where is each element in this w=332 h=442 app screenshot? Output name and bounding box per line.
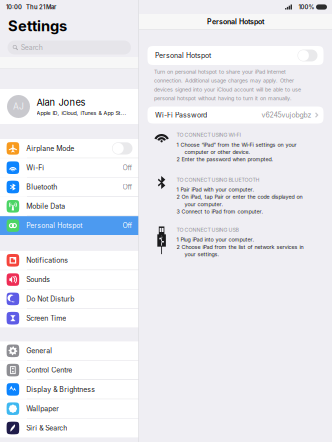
- staticText: Search: [21, 43, 43, 52]
- button[interactable]: Mobile Data: [0, 197, 138, 216]
- button[interactable]: Wallpaper: [0, 399, 138, 418]
- staticText: Thu 21 Mar: [26, 3, 56, 11]
- staticText: Do Not Disturb: [26, 295, 74, 303]
- staticText: TO CONNECT USING USB: [176, 227, 238, 233]
- staticText: 10:00: [6, 3, 22, 11]
- staticText: Control Centre: [26, 366, 72, 374]
- staticText: Off: [122, 221, 132, 230]
- staticText: your computer.: [176, 201, 223, 207]
- staticText: Off: [122, 183, 132, 191]
- button[interactable]: Airplane Mode: [0, 139, 138, 158]
- staticText: your settings.: [176, 251, 219, 257]
- button[interactable]: Wi-Fi Password: [147, 101, 323, 123]
- staticText: personal hotspot without having to turn …: [154, 95, 292, 101]
- button[interactable]: Bluetooth: [0, 178, 138, 196]
- button[interactable]: Siri & Search: [0, 419, 138, 437]
- button[interactable]: AJ: [0, 89, 138, 124]
- staticText: Personal Hotspot: [207, 17, 264, 26]
- button[interactable]: General: [0, 341, 138, 360]
- staticText: Sounds: [26, 275, 50, 284]
- staticText: Airplane Mode: [26, 144, 74, 153]
- staticText: connection. Additional usage charges may…: [154, 77, 294, 84]
- staticText: Wi-Fi: [26, 163, 44, 172]
- staticText: 1 Choose “iPad” from the Wi-Fi settings …: [176, 141, 296, 148]
- staticText: Personal Hotspot: [155, 51, 211, 60]
- button[interactable]: Control Centre: [0, 361, 138, 379]
- button[interactable]: Personal Hotspot: [0, 216, 138, 235]
- staticText: 1 Plug iPad into your computer.: [176, 236, 254, 243]
- staticText: computer or other device.: [176, 149, 250, 155]
- staticText: Wi-Fi Password: [155, 111, 207, 119]
- staticText: AJ: [13, 101, 24, 112]
- staticText: Apple ID, iCloud, iTunes & App St...: [36, 110, 126, 116]
- staticText: 3 Connect to iPad from computer.: [176, 208, 263, 215]
- staticText: Off: [122, 163, 132, 172]
- button[interactable]: Do Not Disturb: [0, 289, 138, 308]
- staticText: Siri & Search: [26, 424, 67, 432]
- staticText: Notifications: [26, 256, 68, 264]
- button[interactable]: Notifications: [0, 251, 138, 270]
- staticText: Wallpaper: [26, 404, 59, 413]
- button[interactable]: Screen Time: [0, 309, 138, 328]
- staticText: 2 On iPad, tap Pair or enter the code di…: [176, 194, 302, 200]
- staticText: Display & Brightness: [26, 385, 95, 394]
- staticText: General: [26, 347, 52, 355]
- staticText: Bluetooth: [26, 183, 57, 191]
- staticText: devices signed into your iCloud account …: [154, 86, 301, 93]
- staticText: Alan Jones: [36, 97, 85, 108]
- staticText: v6245vujobgbz: [262, 111, 312, 119]
- button[interactable]: Display & Brightness: [0, 380, 138, 399]
- button[interactable]: Search: [0, 38, 138, 57]
- staticText: Personal Hotspot: [26, 221, 82, 230]
- staticText: Turn on personal hotspot to share your i…: [154, 68, 286, 75]
- staticText: Settings: [8, 17, 67, 35]
- staticText: 100%: [298, 3, 314, 11]
- staticText: TO CONNECT USING BLUETOOTH: [176, 176, 259, 183]
- staticText: TO CONNECT USING WI-FI: [176, 132, 240, 138]
- staticText: Screen Time: [26, 314, 66, 322]
- staticText: Mobile Data: [26, 202, 65, 210]
- button[interactable]: Sounds: [0, 270, 138, 289]
- staticText: 2 Enter the password when prompted.: [176, 156, 273, 163]
- staticText: 1 Pair iPad with your computer.: [176, 186, 254, 193]
- staticText: 2 Choose iPad from the list of network s…: [176, 244, 303, 250]
- button[interactable]: Wi-Fi: [0, 158, 138, 177]
